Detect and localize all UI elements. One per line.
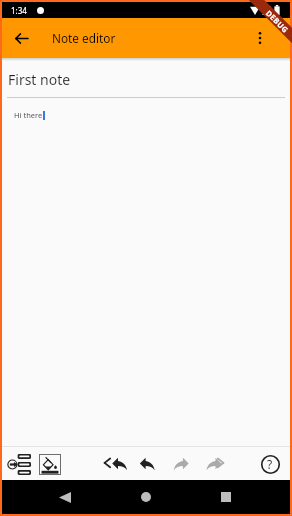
button[interactable]: Undo — [130, 450, 158, 478]
button[interactable]: Redo — [164, 450, 192, 478]
button[interactable]: Back — [51, 483, 79, 511]
staticText: First note — [8, 70, 71, 89]
staticText: DEBUG — [264, 8, 291, 35]
button[interactable]: Help — [256, 450, 284, 478]
button[interactable]: Fill color — [36, 450, 64, 478]
staticText: 1:34 — [11, 5, 27, 16]
button[interactable]: Insert — [5, 450, 33, 478]
staticText: Note editor — [52, 30, 116, 46]
button[interactable]: Recents — [212, 483, 240, 511]
button[interactable]: Redo all — [200, 450, 228, 478]
button[interactable]: Undo all — [100, 450, 128, 478]
staticText: ? — [267, 456, 273, 472]
staticText: Hi there — [14, 110, 43, 120]
button[interactable]: Back — [8, 25, 34, 51]
button[interactable]: More options — [248, 26, 272, 50]
button[interactable]: Home — [132, 483, 160, 511]
